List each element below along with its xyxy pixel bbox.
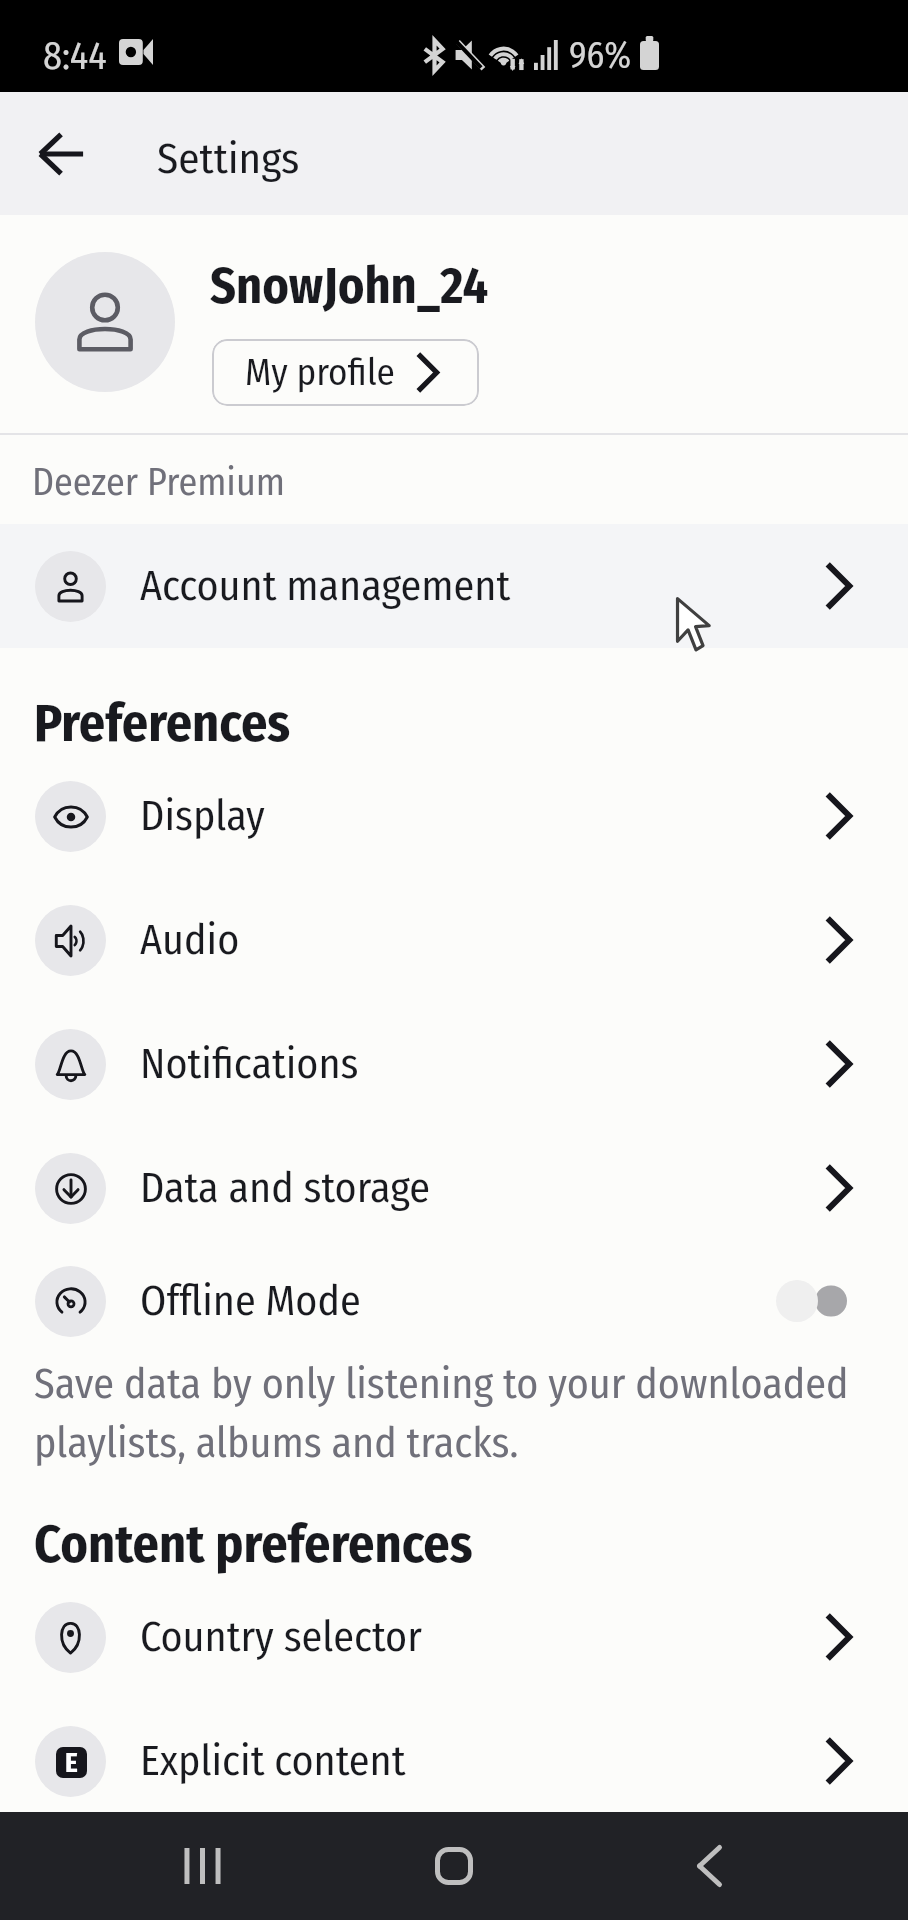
button[interactable]: Notifications — [0, 1002, 908, 1126]
button[interactable]: Data and storage — [0, 1126, 908, 1250]
staticText: Account management — [140, 561, 825, 611]
staticText: Audio — [140, 915, 825, 965]
staticText: 8:44 — [43, 33, 107, 79]
button[interactable]: Back — [17, 110, 105, 198]
staticText: Explicit content — [140, 1736, 825, 1786]
staticText: My profile — [245, 350, 395, 394]
button[interactable]: Recent apps — [152, 1812, 252, 1920]
button[interactable]: Home — [404, 1812, 504, 1920]
staticText: 96% — [569, 34, 632, 77]
staticText: Data and storage — [140, 1163, 825, 1213]
button[interactable]: Offline Mode — [0, 1250, 908, 1352]
button[interactable]: Audio — [0, 878, 908, 1002]
button[interactable]: E — [0, 1699, 908, 1823]
button[interactable]: SnowJohn_24 — [0, 215, 908, 433]
staticText: Display — [140, 791, 825, 841]
staticText: Settings — [157, 133, 300, 185]
staticText: Deezer Premium — [32, 459, 286, 505]
staticText: Preferences — [34, 692, 291, 754]
staticText: Content preferences — [34, 1513, 473, 1575]
staticText: SnowJohn_24 — [210, 256, 489, 316]
staticText: Save data by only listening to your down… — [34, 1359, 896, 1468]
button[interactable]: Display — [0, 754, 908, 878]
staticText: Country selector — [140, 1612, 825, 1662]
button[interactable]: Back — [659, 1812, 759, 1920]
button[interactable]: Country selector — [0, 1575, 908, 1699]
button[interactable]: Account management — [0, 524, 908, 648]
staticText: E — [65, 1747, 78, 1778]
button[interactable]: My profile — [212, 339, 479, 406]
staticText: Notifications — [140, 1039, 825, 1089]
staticText: Offline Mode — [140, 1276, 781, 1326]
button[interactable]: Offline Mode toggle — [776, 1279, 847, 1323]
